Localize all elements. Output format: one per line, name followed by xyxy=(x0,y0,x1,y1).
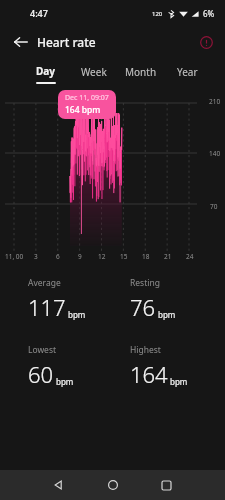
staticText: 6% xyxy=(203,8,215,19)
button[interactable]: Day xyxy=(22,58,70,90)
button[interactable]: Lowest xyxy=(28,344,112,389)
staticText: 164 bpm xyxy=(65,104,101,116)
button[interactable]: Resting xyxy=(130,277,225,322)
button[interactable]: Information xyxy=(195,31,217,53)
staticText: 140 xyxy=(209,149,221,158)
button[interactable]: Dec 11, 09:07 xyxy=(58,90,116,119)
button[interactable]: Year xyxy=(164,58,211,90)
staticText: bpm xyxy=(158,309,176,320)
staticText: Day xyxy=(36,64,56,78)
staticText: 6 xyxy=(56,252,60,261)
button[interactable]: Back xyxy=(46,472,72,498)
staticText: 164 xyxy=(130,359,168,389)
staticText: 60 xyxy=(28,359,54,389)
button[interactable]: Average xyxy=(28,277,112,322)
staticText: Resting xyxy=(130,277,160,289)
staticText: Year xyxy=(177,65,198,79)
staticText: Highest xyxy=(130,344,161,356)
staticText: Heart rate xyxy=(37,34,96,50)
staticText: bpm xyxy=(56,376,74,387)
staticText: 117 xyxy=(28,292,66,322)
staticText: Lowest xyxy=(28,344,57,356)
button[interactable]: Recents xyxy=(153,472,179,498)
staticText: 120 xyxy=(152,10,163,18)
staticText: 3 xyxy=(34,252,38,261)
staticText: Dec 11, 09:07 xyxy=(65,93,109,103)
button[interactable]: Week xyxy=(70,58,117,90)
staticText: Month xyxy=(125,65,157,79)
staticText: Week xyxy=(81,65,107,79)
staticText: bpm xyxy=(68,309,86,320)
staticText: 18 xyxy=(142,252,150,261)
staticText: 21 xyxy=(164,252,172,261)
staticText: bpm xyxy=(170,376,188,387)
staticText: 11, 00 xyxy=(5,252,24,261)
staticText: 12 xyxy=(98,252,106,261)
button[interactable]: Highest xyxy=(130,344,225,389)
staticText: 15 xyxy=(120,252,128,261)
staticText: Average xyxy=(28,277,61,289)
staticText: 210 xyxy=(209,97,221,106)
button[interactable]: Home xyxy=(100,472,126,498)
staticText: 24 xyxy=(186,252,194,261)
staticText: 70 xyxy=(210,202,218,211)
staticText: 9 xyxy=(78,252,82,261)
button[interactable]: Back xyxy=(8,29,34,55)
staticText: 4:47 xyxy=(30,7,48,19)
button[interactable]: Month xyxy=(117,58,164,90)
staticText: 76 xyxy=(130,292,156,322)
